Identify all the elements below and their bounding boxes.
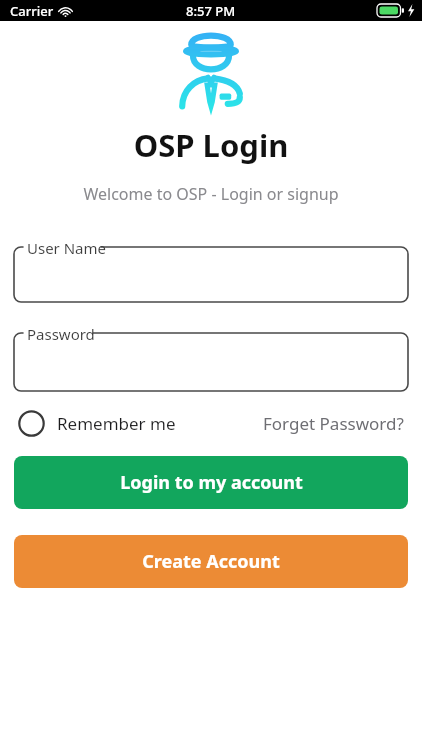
button[interactable]: Remember me	[18, 410, 182, 437]
staticText: User Name	[27, 238, 107, 258]
staticText: Welcome to OSP - Login or signup	[0, 183, 422, 205]
staticText: OSP Login	[0, 124, 422, 166]
button[interactable]: Create Account	[14, 535, 408, 588]
button[interactable]: Forget Password?	[263, 412, 404, 435]
button[interactable]: User Name	[14, 238, 408, 302]
staticText: Password	[27, 324, 95, 344]
button[interactable]: Login to my account	[14, 456, 408, 509]
staticText: Forget Password?	[263, 412, 404, 435]
staticText: Remember me	[57, 412, 176, 435]
staticText: Carrier	[10, 2, 54, 20]
button[interactable]: Password	[14, 324, 408, 391]
staticText: Login to my account	[120, 470, 303, 495]
staticText: 8:57 PM	[186, 2, 236, 20]
staticText: Create Account	[142, 549, 280, 574]
